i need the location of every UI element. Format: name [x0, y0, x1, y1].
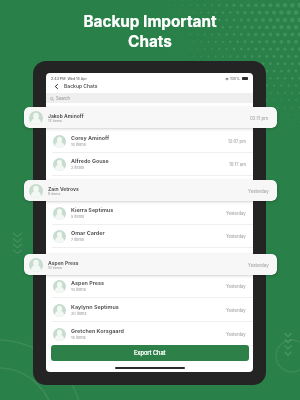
staticText: Backup Important Chats — [83, 12, 217, 51]
staticText: 5 items — [71, 214, 85, 219]
staticText: Alfredo Gouse — [71, 158, 109, 165]
staticText: 7 items — [71, 237, 84, 242]
staticText: Export Chat — [134, 350, 166, 357]
staticText: Zain Vetrovs — [48, 186, 79, 192]
staticText: 8 items — [48, 192, 61, 196]
button[interactable]: Alfredo Gouse — [53, 153, 246, 175]
staticText: Backup Chats — [64, 83, 98, 89]
button[interactable]: Zain Vetrovs — [24, 180, 277, 201]
button[interactable]: Back — [51, 81, 61, 91]
staticText: 10:17 am — [229, 162, 246, 167]
button[interactable]: Gretchen Korsgaard — [53, 323, 246, 345]
staticText: 15 items — [71, 335, 86, 340]
staticText: Search — [56, 96, 70, 101]
staticText: Gretchen Korsgaard — [71, 328, 124, 335]
button[interactable]: Export Chat — [51, 345, 249, 361]
staticText: Aspen Press — [48, 260, 79, 266]
staticText: 10 items — [71, 142, 86, 147]
staticText: 100% — [230, 77, 240, 81]
staticText: Yesterday — [248, 263, 269, 268]
staticText: Corey Aminoff — [71, 135, 110, 142]
staticText: Omar Carder — [71, 230, 105, 237]
button[interactable]: Kaylynn Septimus — [53, 299, 246, 321]
button[interactable]: Corey Aminoff — [53, 130, 246, 152]
staticText: Yesterday — [226, 234, 246, 239]
button[interactable]: Omar Carder — [53, 225, 246, 247]
button[interactable]: Kierra Septimus — [53, 202, 246, 224]
staticText: Kierra Septimus — [71, 207, 114, 214]
button[interactable]: Search — [46, 93, 253, 103]
staticText: Aspen Press — [71, 280, 105, 287]
staticText: 20 items — [71, 311, 87, 316]
staticText: Kaylynn Septimus — [71, 304, 119, 311]
staticText: Jakob Aminoff — [48, 113, 84, 119]
staticText: 12 items — [48, 119, 62, 123]
button[interactable]: Jakob Aminoff — [24, 107, 277, 128]
button[interactable]: Aspen Press — [53, 275, 246, 297]
staticText: 12:07 pm — [228, 139, 246, 144]
staticText: 02:11 pm — [250, 116, 269, 121]
staticText: Yesterday — [226, 211, 246, 216]
staticText: 10 items — [48, 266, 62, 270]
staticText: Yesterday — [248, 189, 269, 194]
staticText: Yesterday — [226, 332, 246, 337]
staticText: Yesterday — [226, 308, 246, 313]
staticText: 10 items — [71, 287, 86, 292]
staticText: 2 items — [71, 165, 85, 170]
staticText: Yesterday — [226, 284, 246, 289]
button[interactable]: Aspen Press — [24, 254, 277, 275]
staticText: 2:43 PM Wed 16 Apr — [51, 77, 87, 81]
